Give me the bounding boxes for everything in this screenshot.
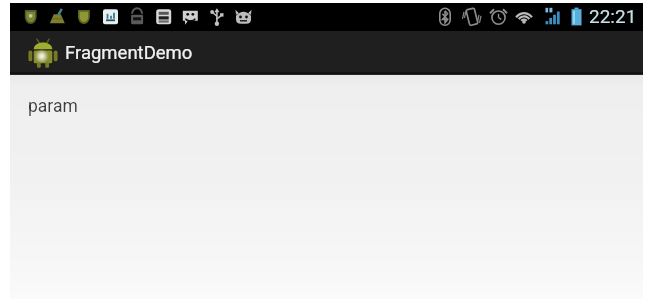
staticText: FragmentDemo <box>65 42 193 64</box>
button[interactable]: App icon <box>10 31 643 75</box>
staticText: param <box>28 96 78 117</box>
staticText: 22:21 <box>589 5 637 27</box>
other: App icon <box>27 37 59 69</box>
